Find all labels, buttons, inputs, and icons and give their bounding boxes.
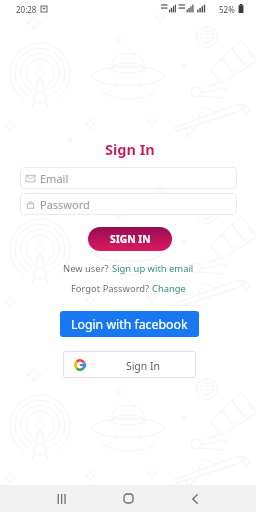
- staticText: 52%: [219, 4, 235, 15]
- button[interactable]: Login with facebook: [60, 311, 199, 337]
- button[interactable]: Home: [108, 485, 148, 512]
- button[interactable]: Sign In: [63, 351, 196, 378]
- staticText: Change: [152, 282, 186, 295]
- button[interactable]: Back: [175, 485, 215, 512]
- button[interactable]: Change: [152, 282, 186, 295]
- staticText: Email: [40, 171, 69, 186]
- staticText: 20:28: [16, 4, 37, 15]
- staticText: SIGN IN: [110, 232, 151, 246]
- staticText: Password: [40, 197, 90, 212]
- staticText: Sign In: [90, 359, 196, 373]
- button[interactable]: SIGN IN: [88, 227, 172, 251]
- staticText: Sign In: [105, 139, 155, 159]
- button[interactable]: Email: [20, 167, 237, 189]
- staticText: Login with facebook: [71, 316, 188, 333]
- staticText: Forgot Password?: [71, 282, 152, 295]
- button[interactable]: Sign up with email: [112, 262, 194, 275]
- staticText: New user?: [63, 262, 112, 275]
- button[interactable]: Password: [20, 193, 237, 215]
- staticText: Sign up with email: [112, 262, 194, 275]
- button[interactable]: Recent apps: [41, 485, 81, 512]
